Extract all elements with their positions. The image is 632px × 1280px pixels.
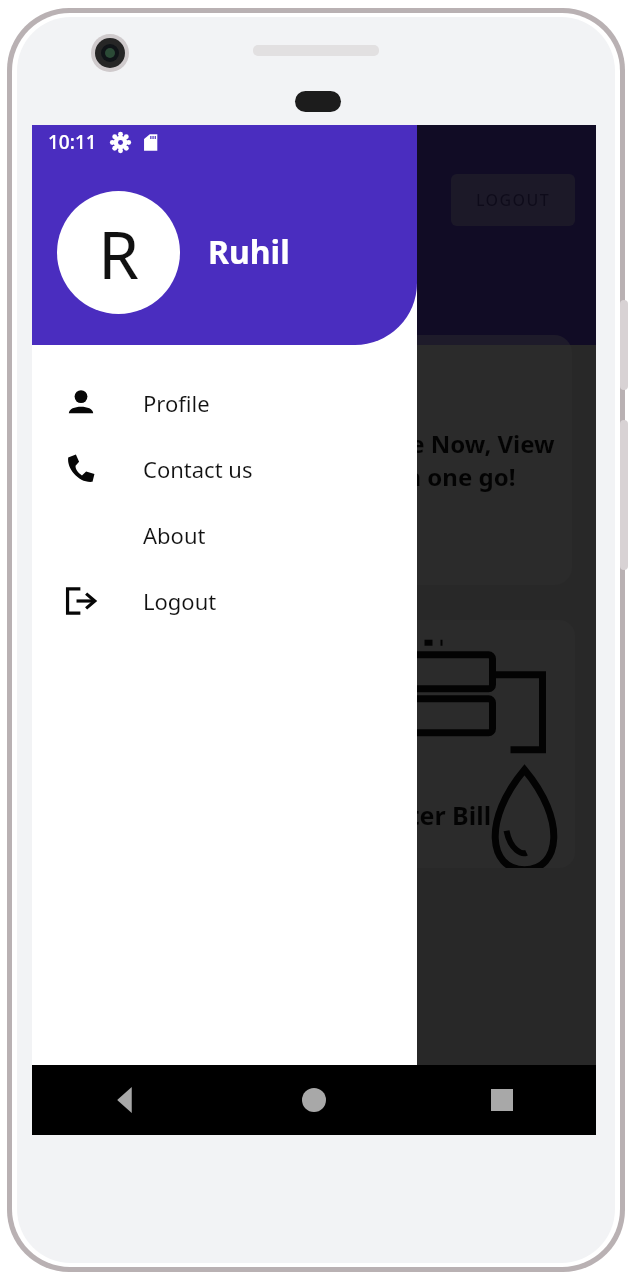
staticText: Profile <box>143 388 210 418</box>
staticText: About <box>143 520 206 550</box>
button[interactable]: Pay Bills, Recharge Now, View History — … <box>182 335 572 585</box>
button[interactable]: Water Bill <box>350 620 575 868</box>
staticText: Ruhil <box>208 230 290 274</box>
button[interactable]: Logout <box>32 568 417 634</box>
button[interactable]: Contact us <box>32 436 417 502</box>
button[interactable]: About <box>32 502 417 568</box>
staticText: Water Bill <box>370 798 492 832</box>
button[interactable]: Home <box>220 1065 408 1135</box>
staticText: 10:11 <box>48 129 97 155</box>
staticText: Contact us <box>143 454 253 484</box>
staticText: Logout <box>143 586 217 616</box>
staticText: LOGOUT <box>476 189 551 211</box>
staticText: R <box>98 208 140 298</box>
button[interactable]: Profile <box>32 370 417 436</box>
staticText: Pay Bills, Recharge Now, View History — … <box>200 427 555 493</box>
button[interactable]: Back <box>32 1065 220 1135</box>
button[interactable]: Recent apps <box>408 1065 596 1135</box>
